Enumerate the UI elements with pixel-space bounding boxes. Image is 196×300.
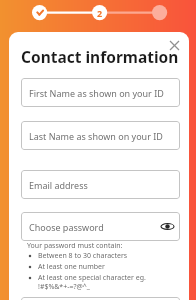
button[interactable] xyxy=(21,297,180,300)
staticText: Email address xyxy=(29,179,88,191)
staticText: First Name as shown on your ID xyxy=(29,87,164,99)
staticText: Contact information xyxy=(21,46,179,67)
staticText: !#$%&*+-=?@^_ xyxy=(38,282,90,292)
button[interactable]: Last Name as shown on your ID xyxy=(21,121,180,150)
staticText: At least one special character eg. xyxy=(38,273,146,283)
staticText: Choose password xyxy=(29,221,104,233)
staticText: Between 8 to 30 characters xyxy=(38,251,128,261)
button[interactable]: Email address xyxy=(21,170,180,199)
button[interactable]: Close xyxy=(165,36,183,54)
staticText: At least one number xyxy=(38,262,105,272)
staticText: Your password must contain: xyxy=(27,241,123,251)
other: Show password xyxy=(161,220,174,233)
staticText: 2 xyxy=(97,7,103,19)
staticText: Last Name as shown on your ID xyxy=(29,130,163,142)
button[interactable]: First Name as shown on your ID xyxy=(21,78,180,107)
button[interactable]: Choose password xyxy=(21,212,180,241)
